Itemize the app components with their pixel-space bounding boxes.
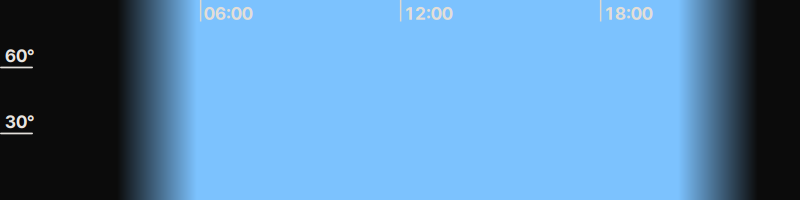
staticText: 18:00 [604,3,653,24]
staticText: 30° [5,111,34,132]
staticText: 60° [5,45,34,66]
staticText: 12:00 [404,3,453,24]
staticText: 06:00 [204,3,253,24]
